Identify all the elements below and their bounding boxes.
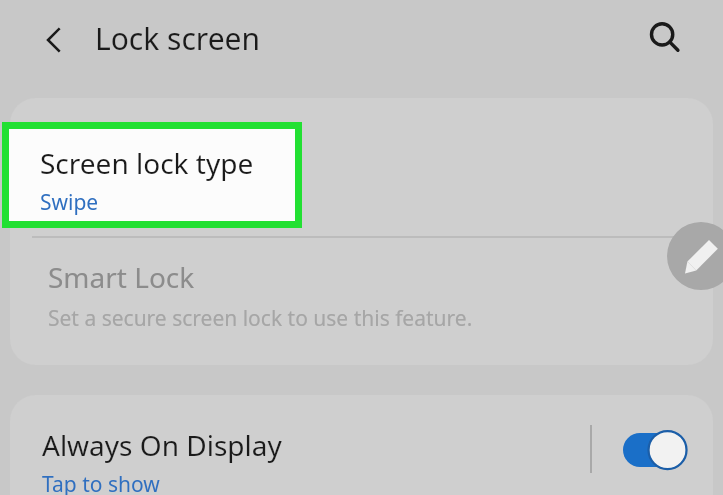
staticText: Smart Lock bbox=[48, 258, 195, 296]
staticText: Tap to show bbox=[42, 470, 160, 495]
button[interactable]: Always On Display toggle bbox=[614, 425, 694, 475]
staticText: Screen lock type bbox=[40, 144, 254, 182]
staticText: Lock screen bbox=[95, 18, 261, 59]
button[interactable]: Always On Display bbox=[10, 395, 713, 495]
button[interactable]: Edit bbox=[667, 222, 723, 290]
button[interactable]: Back bbox=[28, 14, 80, 66]
staticText: Set a secure screen lock to use this fea… bbox=[48, 304, 473, 333]
button[interactable]: Search bbox=[635, 8, 695, 68]
button[interactable]: Smart Lock bbox=[10, 238, 713, 365]
button[interactable]: Screen lock type bbox=[10, 98, 713, 236]
staticText: Swipe bbox=[40, 188, 99, 217]
staticText: Always On Display bbox=[42, 426, 282, 464]
staticText: Screen lock type bbox=[42, 136, 256, 174]
staticText: Swipe bbox=[42, 180, 101, 209]
